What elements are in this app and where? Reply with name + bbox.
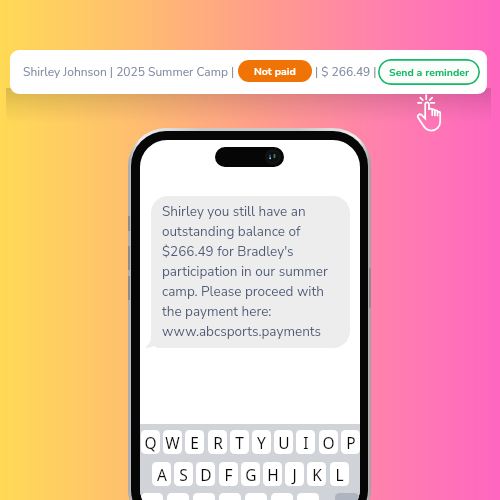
button[interactable]: Q <box>141 430 160 454</box>
button[interactable] <box>271 493 293 500</box>
button[interactable]: P <box>341 430 360 454</box>
staticText: J <box>292 464 297 485</box>
staticText: D <box>200 464 212 485</box>
button[interactable]: G <box>241 462 260 486</box>
staticText: G <box>245 464 257 485</box>
button[interactable]: F <box>219 462 238 486</box>
staticText: E <box>190 432 199 453</box>
button[interactable]: W <box>163 430 182 454</box>
staticText: P <box>346 432 356 453</box>
button[interactable] <box>167 493 189 500</box>
button[interactable]: T <box>230 430 249 454</box>
staticText: Q <box>144 432 157 453</box>
staticText: O <box>322 432 335 453</box>
staticText: S <box>179 464 188 485</box>
button[interactable]: I <box>296 430 315 454</box>
button[interactable] <box>245 493 267 500</box>
button[interactable]: Tap here <box>407 93 451 137</box>
staticText: H <box>267 464 279 485</box>
button[interactable]: A <box>152 462 171 486</box>
button[interactable]: U <box>274 430 293 454</box>
button[interactable] <box>141 493 163 500</box>
button[interactable] <box>297 493 319 500</box>
staticText: F <box>224 464 233 485</box>
staticText: | $ 266.49 | <box>315 64 377 80</box>
staticText: W <box>165 432 180 453</box>
button[interactable]: J <box>285 462 304 486</box>
button[interactable]: S <box>174 462 193 486</box>
staticText: I <box>303 432 309 453</box>
staticText: L <box>335 464 344 485</box>
staticText: U <box>278 432 290 453</box>
button[interactable]: Backspace <box>335 493 359 500</box>
button[interactable]: H <box>263 462 282 486</box>
staticText: R <box>213 432 223 453</box>
button[interactable] <box>219 493 241 500</box>
staticText: K <box>312 464 322 485</box>
staticText: Y <box>257 432 266 453</box>
button[interactable]: D <box>196 462 215 486</box>
button[interactable]: R <box>208 430 227 454</box>
button[interactable]: Not paid <box>238 60 312 82</box>
staticText: T <box>235 432 244 453</box>
staticText: Shirley you still have an outstanding ba… <box>162 202 338 341</box>
staticText: Send a reminder <box>389 65 470 79</box>
staticText: Not paid <box>254 64 296 78</box>
staticText: A <box>157 464 167 485</box>
button[interactable] <box>193 493 215 500</box>
button[interactable]: L <box>330 462 349 486</box>
button[interactable]: Y <box>252 430 271 454</box>
button[interactable]: Send a reminder <box>378 59 480 85</box>
staticText: Shirley Johnson | 2025 Summer Camp | <box>23 64 235 80</box>
button[interactable]: K <box>307 462 326 486</box>
button[interactable]: E <box>185 430 204 454</box>
button[interactable]: O <box>319 430 338 454</box>
